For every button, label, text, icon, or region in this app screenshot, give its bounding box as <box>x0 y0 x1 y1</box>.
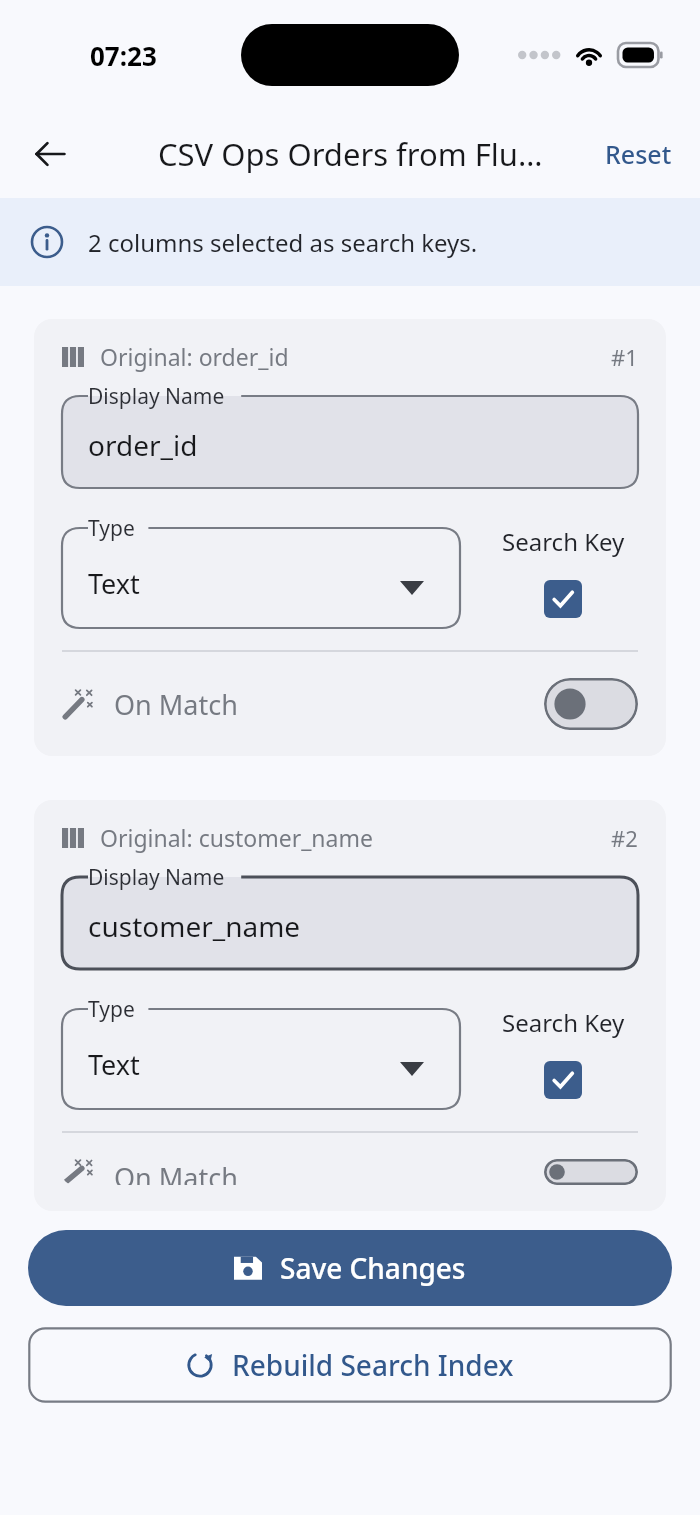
button[interactable]: Original: order_id <box>34 319 666 756</box>
staticText: Search Key <box>502 1006 625 1039</box>
staticText: customer_name <box>88 907 301 945</box>
button[interactable] <box>62 396 638 488</box>
staticText: Text <box>88 565 140 602</box>
staticText: 07:23 <box>90 38 157 73</box>
staticText: order_id <box>88 426 198 464</box>
staticText: 2 columns selected as search keys. <box>88 226 478 259</box>
staticText: Type <box>88 995 135 1024</box>
staticText: CSV Ops Orders from Flu… <box>158 133 543 175</box>
staticText: On Match <box>114 686 238 723</box>
staticText: Original: order_id <box>100 341 289 372</box>
staticText: #2 <box>611 823 638 853</box>
staticText: Save Changes <box>280 1249 466 1287</box>
button[interactable]: Rebuild Search Index <box>28 1327 672 1403</box>
staticText: Original: customer_name <box>100 822 373 853</box>
staticText: Text <box>88 1046 140 1083</box>
button[interactable]: On Match <box>62 678 638 730</box>
button[interactable]: Search Key <box>488 1006 638 1099</box>
staticText: Reset <box>605 137 672 171</box>
button[interactable]: Original: customer_name <box>34 800 666 1211</box>
staticText: Rebuild Search Index <box>232 1346 514 1384</box>
button[interactable]: On Match <box>62 1159 638 1185</box>
staticText: #1 <box>611 342 638 372</box>
button[interactable]: Save Changes <box>28 1230 672 1306</box>
button[interactable] <box>62 877 638 969</box>
button[interactable]: Back <box>20 124 80 184</box>
button[interactable] <box>62 528 460 628</box>
button[interactable] <box>62 1009 460 1109</box>
staticText: Display Name <box>88 863 225 892</box>
button[interactable]: Search Key <box>488 525 638 618</box>
staticText: On Match <box>114 1159 238 1185</box>
staticText: Type <box>88 514 135 543</box>
button[interactable]: Reset <box>591 129 686 179</box>
staticText: Display Name <box>88 382 225 411</box>
staticText: Search Key <box>502 525 625 558</box>
